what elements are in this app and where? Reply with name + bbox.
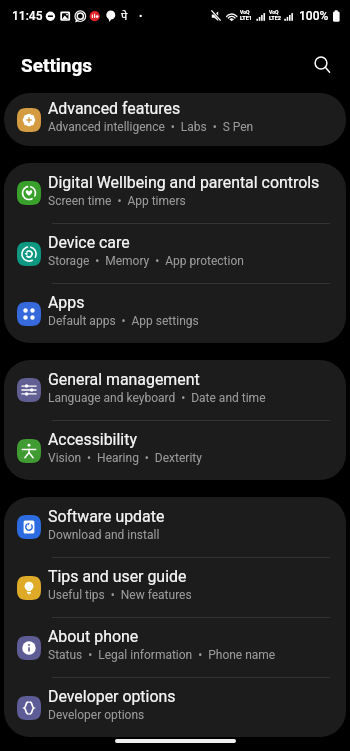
staticText: Advanced intelligence • Labs • S Pen bbox=[48, 120, 254, 134]
staticText: VoQ bbox=[269, 9, 279, 15]
button[interactable]: Device care bbox=[4, 224, 346, 283]
button[interactable]: Developer options bbox=[4, 678, 346, 737]
staticText: General management bbox=[48, 370, 200, 389]
staticText: Language and keyboard • Date and time bbox=[48, 391, 266, 405]
staticText: Download and install bbox=[48, 528, 160, 542]
staticText: Apps bbox=[48, 293, 85, 312]
button[interactable]: Advanced features bbox=[4, 93, 346, 146]
staticText: पे bbox=[121, 8, 128, 23]
staticText: Device care bbox=[48, 233, 130, 252]
staticText: Software update bbox=[48, 507, 165, 526]
staticText: Developer options bbox=[48, 687, 176, 706]
staticText: Digital Wellbeing and parental controls bbox=[48, 173, 320, 192]
staticText: 100% bbox=[299, 9, 329, 23]
staticText: Screen time • App timers bbox=[48, 194, 186, 208]
staticText: 11:45 bbox=[12, 9, 43, 23]
staticText: LTE2 bbox=[269, 15, 282, 21]
button[interactable]: Search bbox=[306, 48, 336, 78]
staticText: Useful tips • New features bbox=[48, 588, 192, 602]
button[interactable]: Software update bbox=[4, 497, 346, 557]
button[interactable]: Accessibility bbox=[4, 421, 346, 480]
staticText: Storage • Memory • App protection bbox=[48, 254, 244, 268]
staticText: Status • Legal information • Phone name bbox=[48, 648, 276, 662]
button[interactable]: General management bbox=[4, 360, 346, 420]
staticText: Developer options bbox=[48, 708, 145, 722]
staticText: Advanced features bbox=[48, 99, 181, 118]
staticText: Tips and user guide bbox=[48, 567, 187, 586]
button[interactable]: About phone bbox=[4, 618, 346, 677]
staticText: Vision • Hearing • Dexterity bbox=[48, 451, 202, 465]
staticText: LTE1 bbox=[240, 15, 253, 21]
button[interactable]: Apps bbox=[4, 284, 346, 343]
staticText: VoQ bbox=[240, 9, 250, 15]
button[interactable]: Digital Wellbeing and parental controls bbox=[4, 163, 346, 223]
staticText: Default apps • App settings bbox=[48, 314, 199, 328]
staticText: About phone bbox=[48, 627, 139, 646]
staticText: Accessibility bbox=[48, 430, 137, 449]
staticText: Settings bbox=[21, 54, 93, 76]
button[interactable]: Tips and user guide bbox=[4, 558, 346, 617]
